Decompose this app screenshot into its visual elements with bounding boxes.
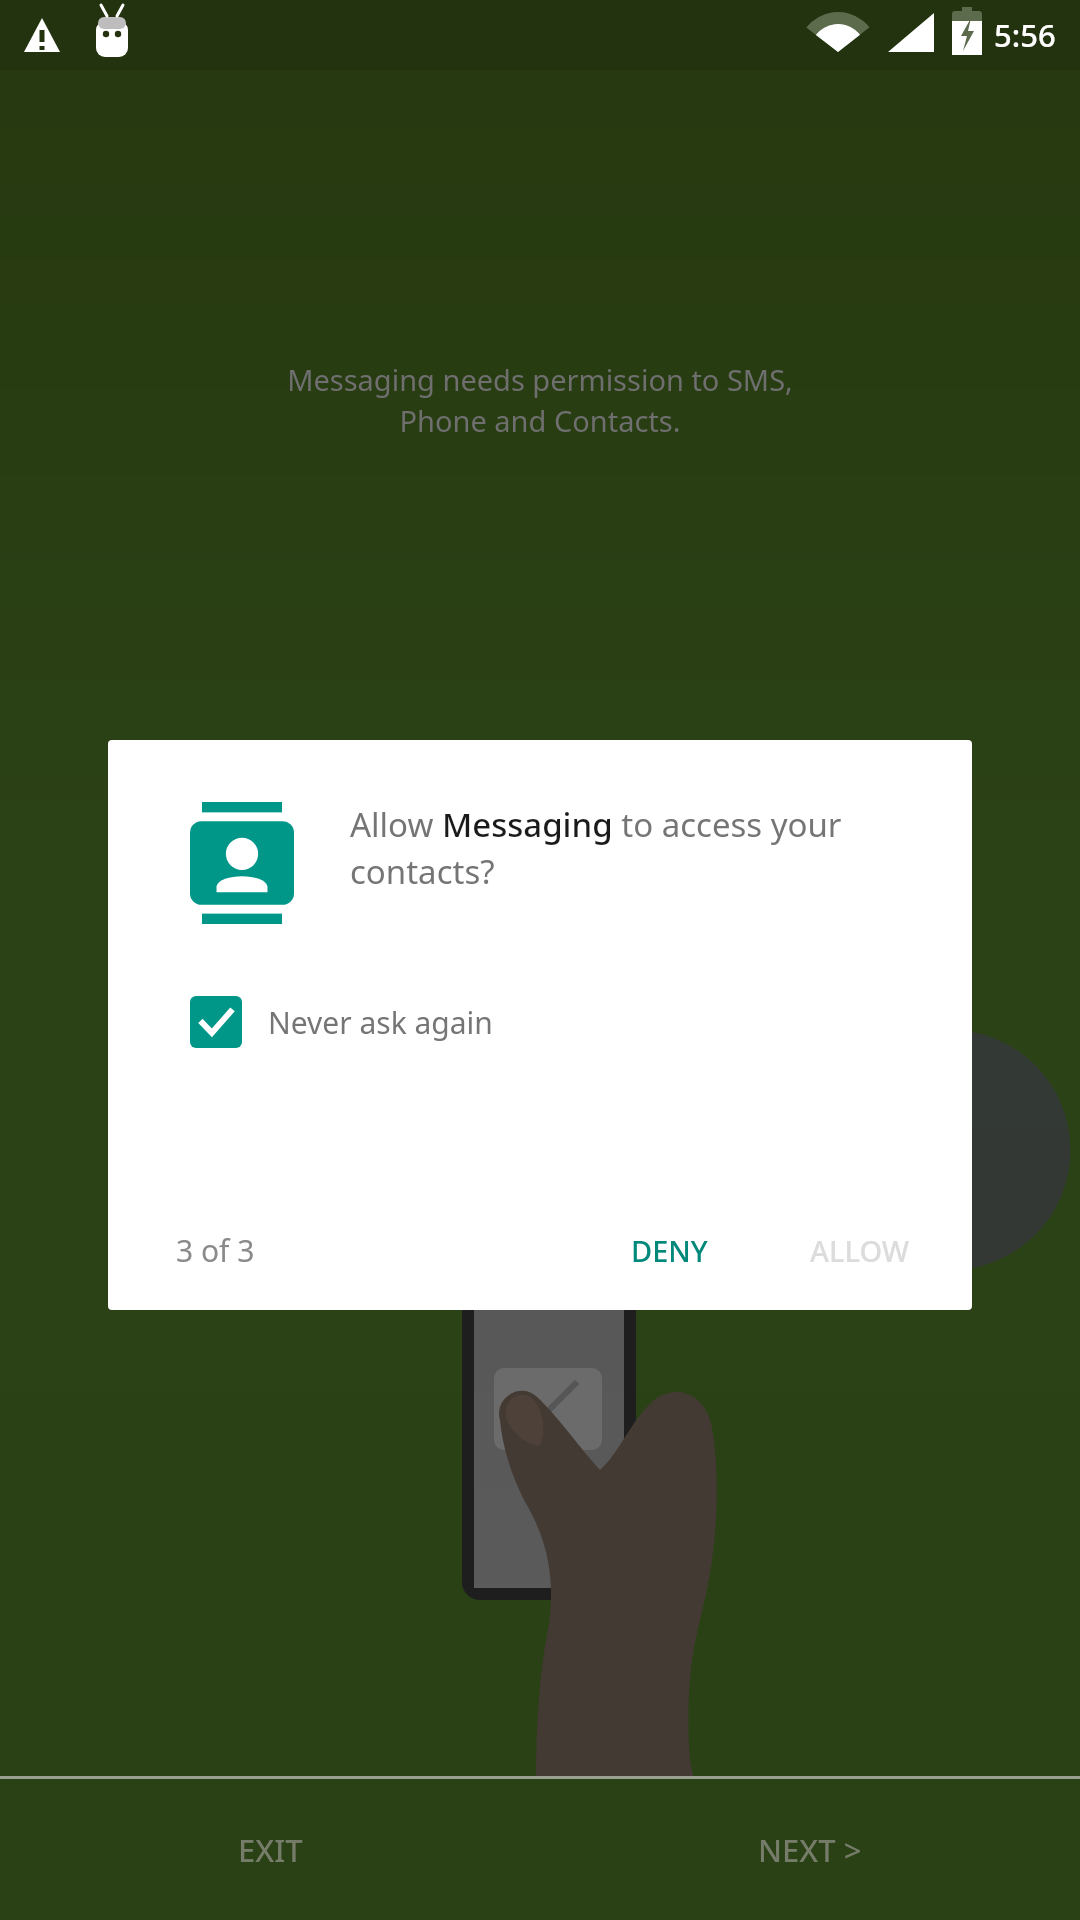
staticText: Never ask again bbox=[268, 1002, 493, 1043]
button[interactable]: DENY bbox=[609, 1217, 730, 1284]
button[interactable]: ALLOW bbox=[788, 1217, 932, 1284]
staticText: 5:56 bbox=[994, 14, 1056, 56]
staticText: 3 of 3 bbox=[176, 1230, 255, 1271]
staticText: NEXT > bbox=[758, 1829, 862, 1871]
staticText: Allow Messaging to access your contacts? bbox=[350, 802, 944, 894]
staticText: Messaging needs permission to SMS, Phone… bbox=[0, 360, 1080, 441]
button[interactable]: Never ask again bbox=[190, 986, 493, 1058]
staticText: ALLOW bbox=[810, 1231, 910, 1270]
button[interactable]: NEXT > bbox=[540, 1779, 1080, 1920]
staticText: DENY bbox=[631, 1231, 708, 1270]
staticText: EXIT bbox=[238, 1829, 303, 1871]
button[interactable]: EXIT bbox=[0, 1779, 540, 1920]
